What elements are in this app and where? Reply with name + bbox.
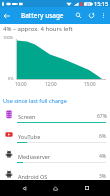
button[interactable]: Recent apps (79, 180, 95, 196)
staticText: YouTube (18, 133, 41, 140)
staticText: 45 (86, 2, 91, 7)
staticText: 10:00 (15, 81, 27, 87)
staticText: Screen (18, 113, 36, 120)
staticText: 4% (99, 153, 107, 160)
staticText: 100% (3, 35, 14, 40)
staticText: Android OS (18, 173, 48, 180)
staticText: Mediaserver (18, 153, 51, 160)
staticText: 0% (8, 76, 14, 81)
staticText: 6% (99, 133, 107, 140)
button[interactable]: Mediaserver (0, 149, 110, 169)
staticText: 15:15 (94, 0, 109, 7)
staticText: 12:00 (45, 81, 57, 87)
button[interactable]: Refresh (85, 9, 98, 22)
staticText: 15:00 (84, 81, 96, 87)
button[interactable]: More options (98, 10, 109, 21)
staticText: Battery usage (21, 11, 64, 20)
staticText: 3% (99, 173, 107, 180)
button[interactable]: Search (72, 9, 85, 22)
staticText: 4% – approx. 4 hours left (3, 25, 73, 33)
button[interactable]: YouTube (0, 129, 110, 149)
button[interactable]: Home (47, 180, 63, 196)
button[interactable]: Android OS (0, 169, 110, 189)
button[interactable]: Navigate up (0, 9, 14, 23)
button[interactable]: Screen (0, 109, 110, 129)
staticText: Use since last full charge (3, 97, 67, 104)
button[interactable]: Use since last full charge (0, 92, 110, 104)
staticText: 67% (97, 113, 107, 120)
button[interactable]: Back (16, 180, 32, 196)
